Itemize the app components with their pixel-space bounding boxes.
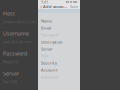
button[interactable]: Username <box>3 30 37 43</box>
button[interactable]: Server <box>41 46 77 52</box>
button[interactable]: Password <box>41 32 77 38</box>
button[interactable]: Description <box>41 39 77 45</box>
staticText: ‹ <box>40 2 42 11</box>
button[interactable]: Host <box>3 10 37 23</box>
staticText: Port <box>41 53 48 59</box>
button[interactable]: Server <box>3 70 37 83</box>
button[interactable]: Name <box>41 18 77 24</box>
staticText: Security <box>41 60 57 66</box>
staticText: Host <box>3 10 15 17</box>
staticText: imap.mail.me.com <box>3 19 37 24</box>
staticText: user@mail.com <box>3 39 32 44</box>
staticText: Description <box>41 39 63 45</box>
button[interactable]: Advanced <box>41 74 77 80</box>
staticText: Server <box>41 46 53 52</box>
staticText: Username <box>3 30 29 37</box>
button[interactable]: Email <box>41 25 77 31</box>
staticText: Server <box>3 70 19 77</box>
button[interactable]: Account <box>41 67 77 73</box>
staticText: Required <box>3 59 18 64</box>
staticText: Port 993 <box>3 79 17 84</box>
button[interactable]: Save <box>70 4 78 9</box>
staticText: Add account <box>43 4 68 9</box>
staticText: Password <box>41 32 58 38</box>
staticText: Name <box>41 18 52 24</box>
button[interactable]: Back <box>40 2 42 11</box>
button[interactable]: Security <box>41 60 77 66</box>
staticText: Save <box>70 4 78 9</box>
staticText: Email <box>41 25 51 31</box>
button[interactable]: Password <box>3 50 37 63</box>
staticText: Account <box>41 67 58 73</box>
staticText: 9:41 <box>41 0 48 5</box>
staticText: Advanced <box>41 74 58 80</box>
staticText: Password <box>3 50 27 57</box>
